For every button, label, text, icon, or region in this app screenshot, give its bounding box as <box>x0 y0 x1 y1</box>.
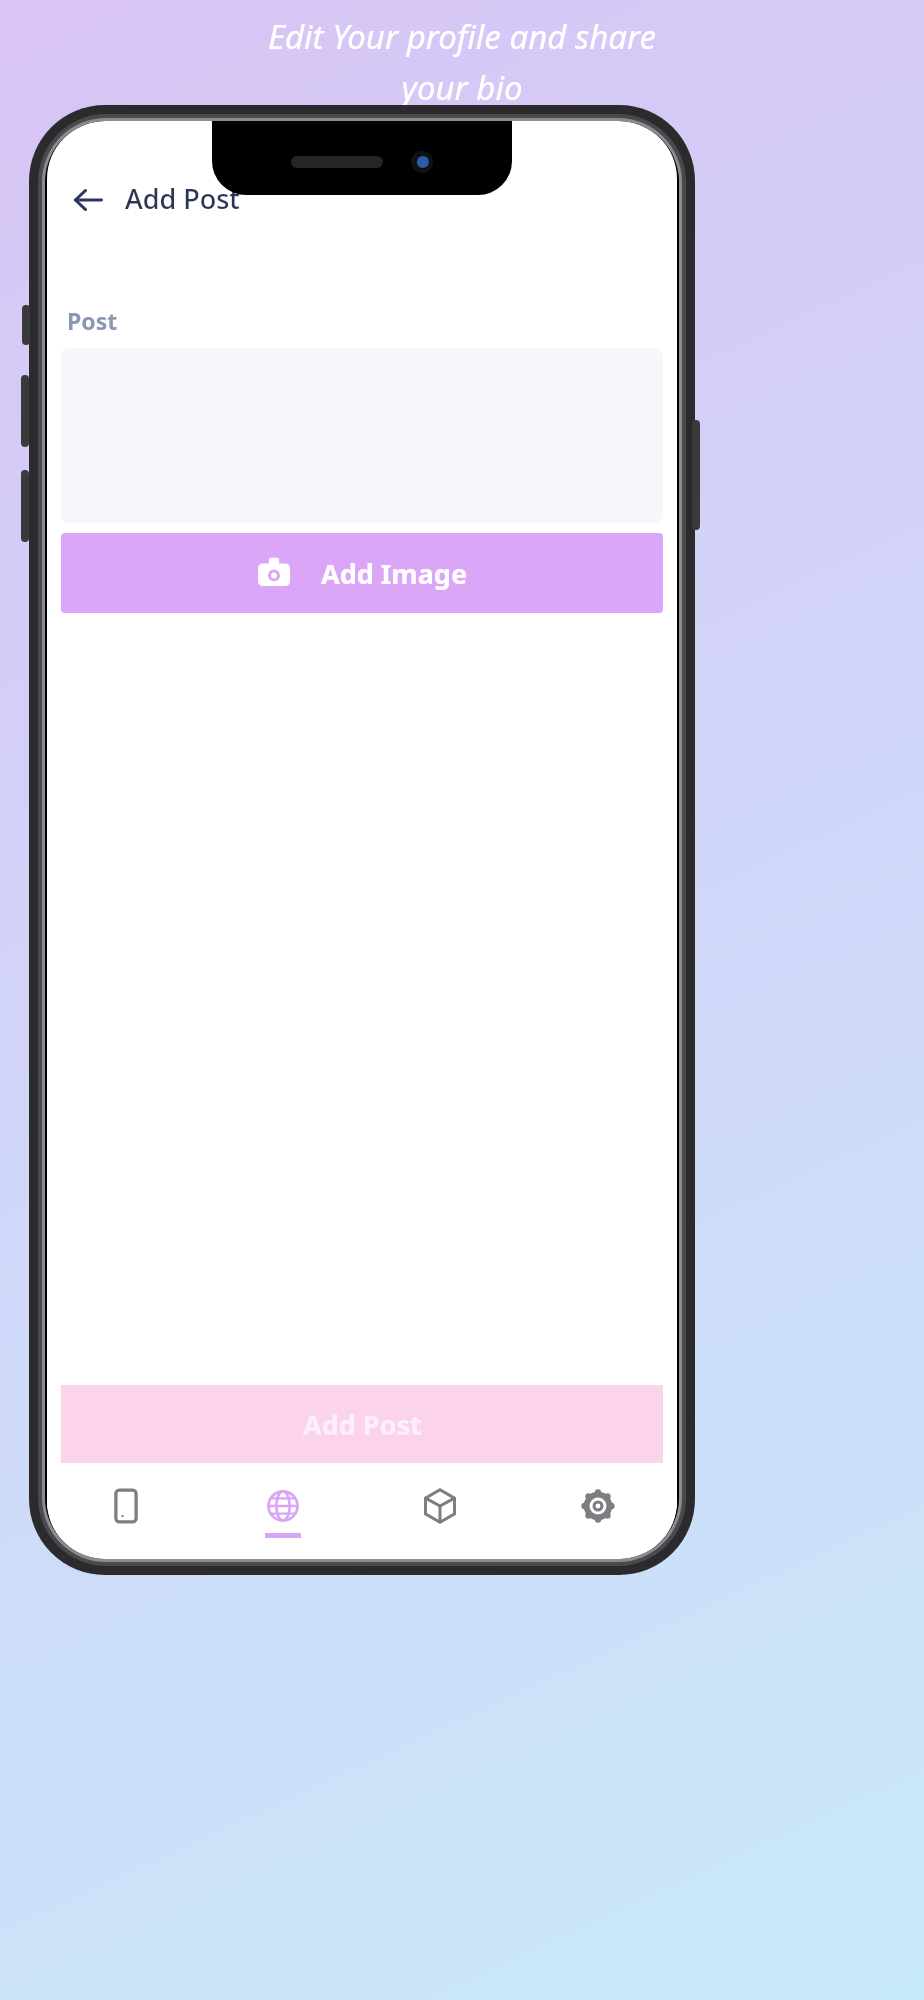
staticText: Post <box>67 305 118 336</box>
button[interactable]: Add Post <box>61 1385 663 1463</box>
button[interactable]: Devices <box>47 1463 204 1559</box>
staticText: Add Post <box>125 180 240 217</box>
button[interactable]: Explore <box>204 1463 361 1559</box>
staticText: your bio <box>401 65 523 110</box>
staticText: Add Post <box>303 1406 422 1443</box>
button[interactable]: Settings <box>519 1463 677 1559</box>
staticText: Add Image <box>321 555 468 592</box>
button[interactable]: Models <box>361 1463 519 1559</box>
button[interactable]: Back <box>65 177 111 223</box>
button[interactable]: Add Image <box>61 533 663 613</box>
staticText: Edit Your profile and share <box>268 14 656 59</box>
